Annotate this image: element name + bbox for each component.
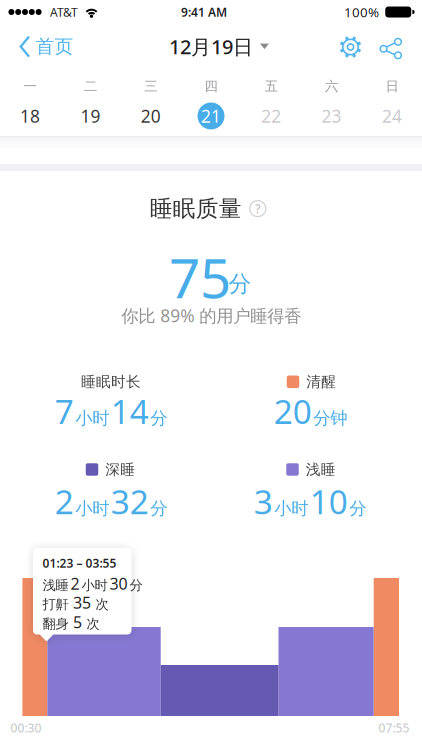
staticText: 睡眠时长 [81, 373, 141, 391]
staticText: 23 [322, 104, 342, 127]
staticText: 分钟 [313, 407, 347, 429]
button[interactable]: Share [375, 32, 405, 62]
staticText: 打鼾 [42, 596, 68, 612]
staticText: 2 [70, 573, 79, 594]
button[interactable]: 五 [258, 78, 285, 129]
button[interactable]: Help [249, 200, 267, 218]
button[interactable]: 12月19日 [169, 33, 269, 60]
staticText: 首页 [35, 35, 73, 58]
staticText: 翻身 [42, 616, 68, 632]
staticText: 30 [109, 573, 127, 594]
staticText: 深睡 [105, 460, 135, 478]
staticText: 18 [20, 104, 40, 127]
staticText: 3 [254, 479, 273, 523]
staticText: 小时 [81, 577, 107, 593]
staticText: 00:30 [10, 720, 41, 736]
staticText: 清醒 [306, 373, 336, 391]
button[interactable]: 日 [378, 78, 405, 129]
staticText: 浅睡 [42, 577, 68, 593]
staticText: 你比 89% 的用户睡得香 [121, 304, 301, 327]
staticText: 14 [111, 389, 149, 433]
staticText: 次 [86, 616, 99, 632]
staticText: 20 [274, 389, 312, 433]
staticText: 浅睡 [306, 460, 336, 478]
staticText: 分 [150, 498, 167, 519]
staticText: 日 [385, 78, 398, 94]
button[interactable]: 四 [197, 78, 224, 129]
staticText: 01:23 – 03:55 [42, 555, 116, 571]
button[interactable]: 一 [17, 78, 44, 129]
staticText: 五 [265, 78, 278, 94]
button[interactable]: Back [19, 26, 73, 68]
staticText: 四 [204, 78, 217, 94]
staticText: 22 [261, 104, 281, 127]
staticText: 小时 [274, 498, 308, 519]
staticText: AT&T [50, 4, 78, 20]
staticText: 分 [228, 270, 251, 298]
staticText: 小时 [75, 407, 109, 429]
staticText: 二 [84, 78, 97, 94]
staticText: 12月19日 [169, 33, 253, 60]
button[interactable]: Settings [335, 32, 365, 62]
staticText: 10 [310, 479, 348, 523]
staticText: 9:41 AM [181, 4, 227, 20]
staticText: 32 [111, 479, 149, 523]
staticText: 07:55 [378, 720, 409, 736]
staticText: 睡眠质量 [150, 195, 242, 222]
staticText: 75 [169, 241, 231, 313]
button[interactable]: 六 [318, 78, 345, 129]
staticText: 7 [55, 389, 74, 433]
staticText: 小时 [75, 498, 109, 519]
staticText: 六 [325, 78, 338, 94]
staticText: 一 [24, 78, 37, 94]
staticText: 2 [55, 479, 74, 523]
staticText: 19 [80, 104, 100, 127]
button[interactable]: 二 [77, 78, 104, 129]
staticText: 20 [141, 104, 161, 127]
staticText: 100% [344, 3, 379, 21]
staticText: 5 [73, 611, 82, 633]
staticText: 次 [95, 596, 108, 612]
staticText: 分 [129, 577, 142, 593]
staticText: 分 [150, 407, 167, 429]
staticText: 分 [349, 498, 366, 519]
staticText: 24 [382, 104, 402, 127]
staticText: 三 [144, 78, 157, 94]
staticText: 21 [201, 104, 221, 127]
staticText: 35 [73, 592, 91, 613]
staticText: ? [255, 201, 260, 216]
button[interactable]: 三 [137, 78, 164, 129]
